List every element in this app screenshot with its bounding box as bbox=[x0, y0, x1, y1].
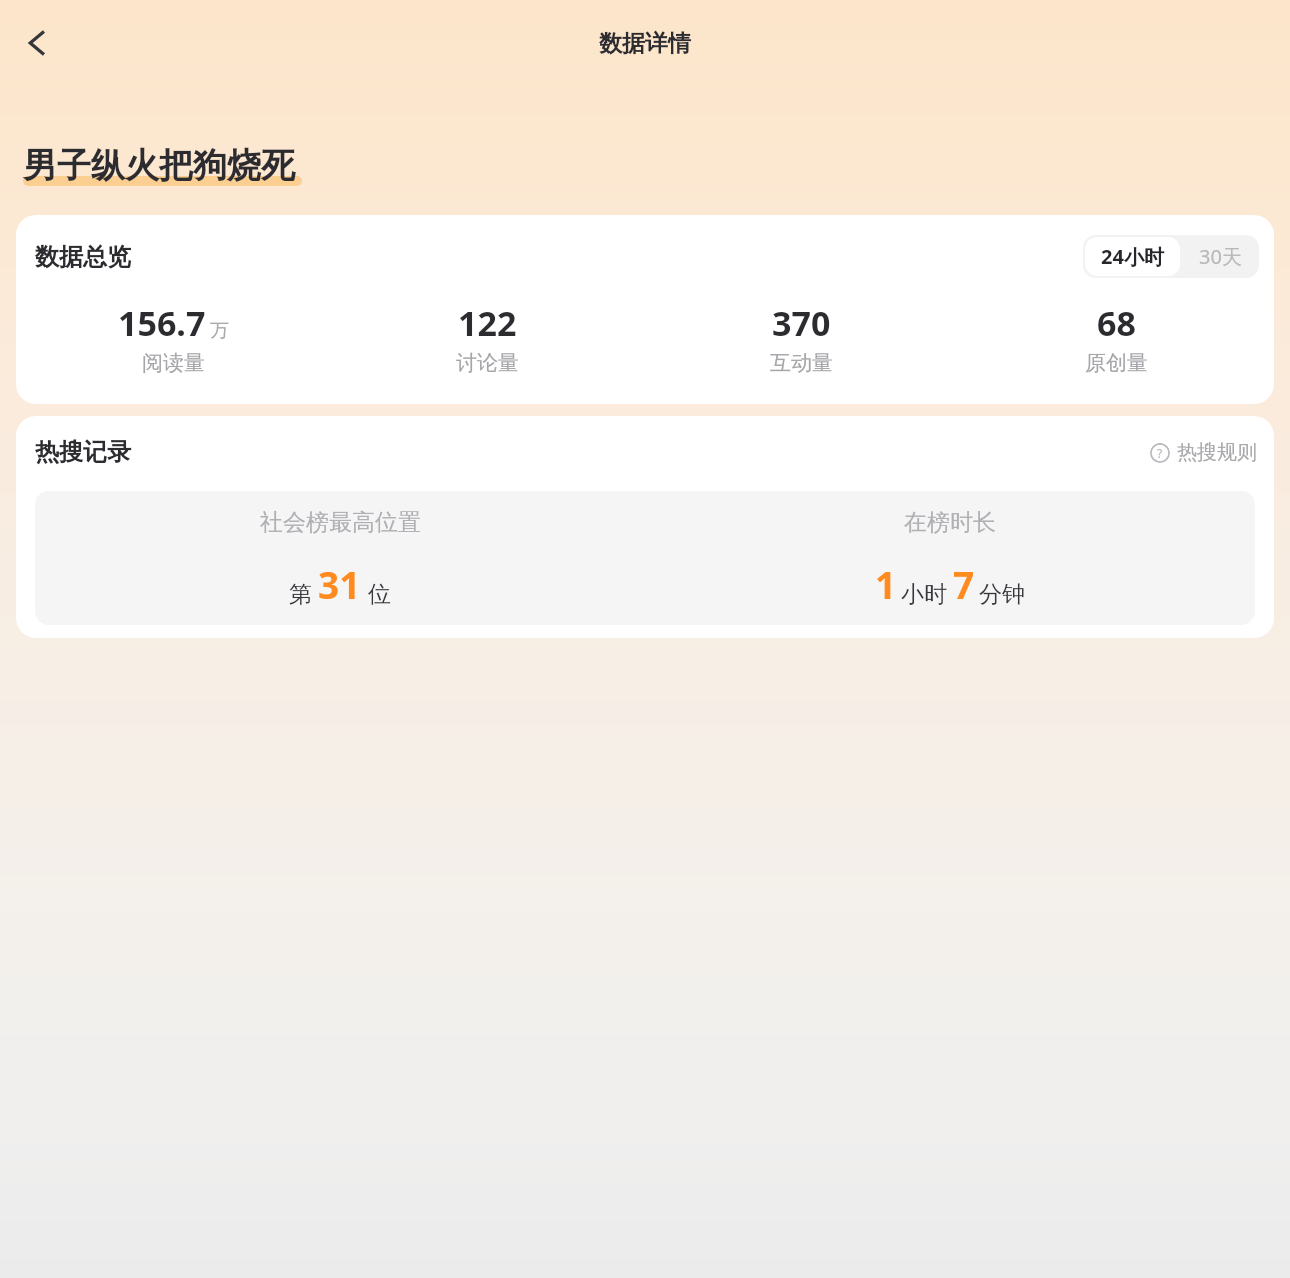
button[interactable]: ? bbox=[1150, 440, 1257, 465]
staticText: 31 bbox=[318, 559, 361, 609]
staticText: 数据详情 bbox=[599, 29, 691, 58]
staticText: 热搜记录 bbox=[35, 437, 131, 467]
staticText: 讨论量 bbox=[456, 350, 519, 376]
button[interactable]: 370 bbox=[644, 300, 959, 376]
staticText: 24小时 bbox=[1101, 243, 1164, 270]
staticText: 小时 bbox=[901, 580, 947, 609]
staticText: 男子纵火把狗烧死 bbox=[23, 144, 295, 187]
staticText: 370 bbox=[772, 300, 831, 346]
button[interactable]: 24小时 bbox=[1085, 237, 1180, 276]
staticText: 1 bbox=[875, 559, 897, 609]
staticText: 第 bbox=[289, 580, 312, 609]
button[interactable]: 68 bbox=[959, 300, 1274, 376]
staticText: ? bbox=[1157, 445, 1163, 461]
staticText: 互动量 bbox=[770, 350, 833, 376]
button[interactable]: 122 bbox=[330, 300, 644, 376]
staticText: 阅读量 bbox=[142, 350, 205, 376]
staticText: 分钟 bbox=[979, 580, 1025, 609]
button[interactable]: Back bbox=[8, 14, 66, 72]
staticText: 原创量 bbox=[1085, 350, 1148, 376]
staticText: 68 bbox=[1097, 300, 1136, 346]
button[interactable]: 在榜时长 bbox=[645, 491, 1255, 625]
staticText: 位 bbox=[368, 580, 391, 609]
staticText: 数据总览 bbox=[35, 242, 131, 272]
staticText: 热搜规则 bbox=[1177, 440, 1257, 465]
button[interactable]: 社会榜最高位置 bbox=[35, 491, 645, 625]
staticText: 156.7 bbox=[118, 300, 206, 346]
button[interactable]: 156.7 bbox=[16, 300, 330, 376]
staticText: 7 bbox=[953, 559, 975, 609]
staticText: 万 bbox=[210, 319, 229, 343]
button[interactable]: 30天 bbox=[1182, 235, 1259, 278]
staticText: 在榜时长 bbox=[904, 508, 996, 537]
staticText: 122 bbox=[458, 300, 517, 346]
staticText: 社会榜最高位置 bbox=[260, 508, 421, 537]
staticText: 30天 bbox=[1199, 243, 1242, 270]
